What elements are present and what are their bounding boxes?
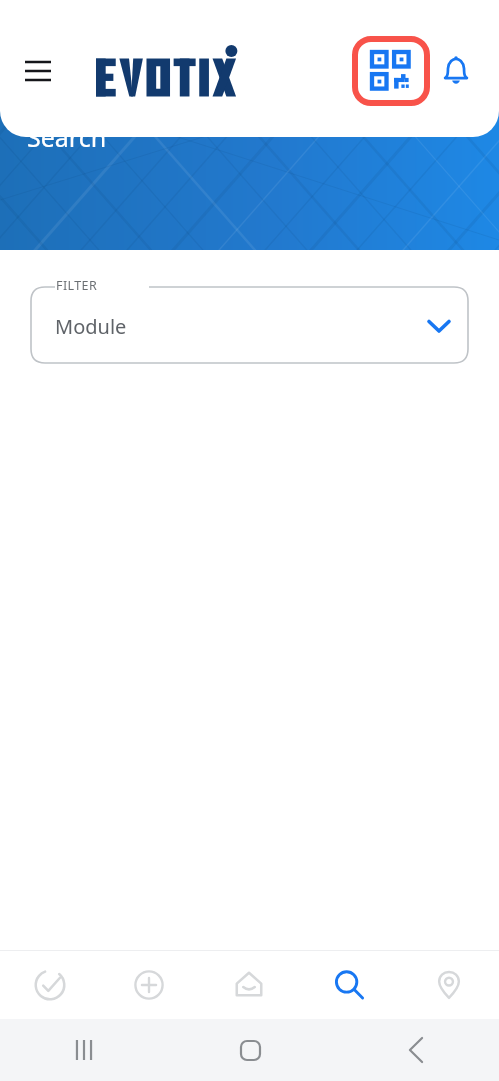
button[interactable]: Tasks xyxy=(0,951,99,1019)
button[interactable]: Add xyxy=(99,951,199,1019)
button[interactable]: Back xyxy=(333,1019,499,1081)
staticText: Module xyxy=(55,313,127,340)
button[interactable]: Recent apps xyxy=(0,1019,167,1081)
button[interactable]: Home xyxy=(199,951,299,1019)
staticText: FILTER xyxy=(56,277,98,294)
button[interactable]: Scan QR code xyxy=(352,36,430,106)
button[interactable]: FILTER xyxy=(29,277,470,365)
staticText: Search xyxy=(27,120,107,154)
button[interactable]: Notifications xyxy=(430,45,482,97)
other: Expand filter xyxy=(426,313,452,339)
button[interactable]: Location xyxy=(399,951,499,1019)
button[interactable]: Home xyxy=(167,1019,333,1081)
button[interactable]: Menu xyxy=(14,47,62,95)
button[interactable] xyxy=(96,45,248,97)
button[interactable]: Search xyxy=(299,951,399,1019)
